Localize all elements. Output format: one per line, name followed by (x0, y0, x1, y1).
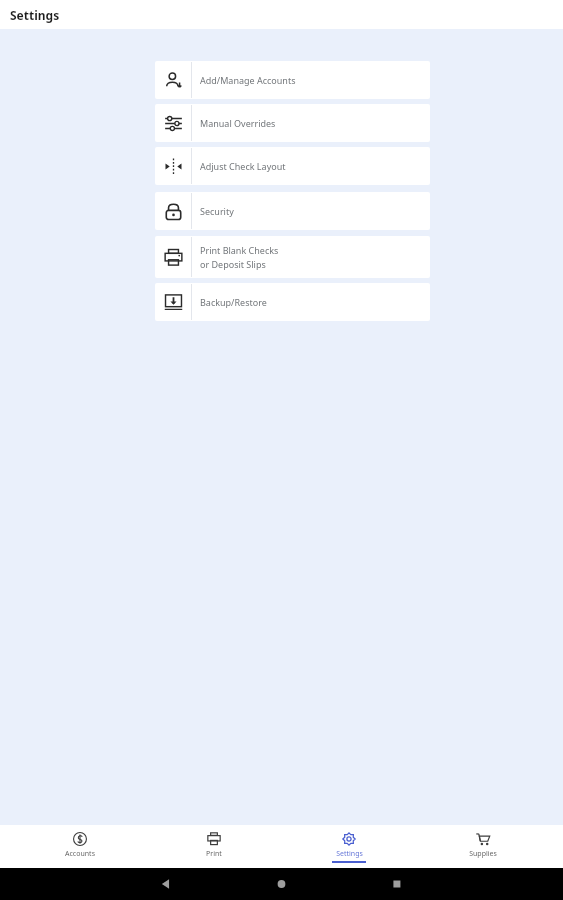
staticText: Settings (336, 849, 363, 859)
staticText: Adjust Check Layout (200, 160, 286, 172)
staticText: Settings (10, 7, 60, 23)
staticText: Security (200, 205, 234, 217)
button[interactable]: Print (159, 825, 269, 868)
button[interactable]: Accounts (25, 825, 135, 868)
staticText: Accounts (65, 849, 95, 859)
button[interactable]: Print Blank Checks (155, 236, 430, 278)
button[interactable]: Backup/Restore (155, 283, 430, 321)
button[interactable]: Adjust Check Layout (155, 147, 430, 185)
button[interactable]: Settings (294, 825, 404, 868)
staticText: Supplies (469, 849, 497, 859)
staticText: Backup/Restore (200, 296, 267, 308)
staticText: Print Blank Checks (200, 244, 279, 256)
button[interactable]: Security (155, 192, 430, 230)
button[interactable]: Add/Manage Accounts (155, 61, 430, 99)
staticText: Print (206, 849, 222, 859)
staticText: or Deposit Slips (200, 258, 266, 270)
button[interactable]: Supplies (428, 825, 538, 868)
staticText: Manual Overrides (200, 117, 276, 129)
button[interactable]: Manual Overrides (155, 104, 430, 142)
staticText: Add/Manage Accounts (200, 74, 296, 86)
